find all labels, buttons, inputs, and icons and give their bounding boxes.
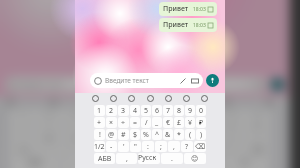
button[interactable]: ¥ — [185, 117, 195, 128]
button[interactable]: АБВ — [9, 157, 60, 168]
button[interactable]: ; — [156, 145, 184, 156]
button[interactable]: tool4 — [179, 98, 188, 107]
button[interactable]: 6 — [152, 105, 162, 116]
button[interactable]: 5 — [116, 109, 141, 120]
button[interactable]: @ — [106, 129, 117, 140]
button[interactable]: Введите текст — [5, 77, 268, 92]
button[interactable]: tool2 — [92, 98, 101, 107]
button[interactable]: * — [174, 129, 184, 140]
button[interactable]: 6 — [142, 109, 167, 120]
button[interactable]: Введите текст — [90, 73, 203, 88]
button[interactable]: 8 — [194, 109, 219, 120]
button[interactable]: 8 — [174, 105, 184, 116]
button[interactable]: ÷ — [118, 117, 129, 128]
button[interactable]: × — [106, 117, 117, 128]
button[interactable]: 0 — [196, 105, 206, 116]
button[interactable]: Русский — [138, 153, 160, 164]
button[interactable]: & — [168, 133, 193, 144]
button[interactable]: / — [116, 121, 141, 132]
button[interactable]: ? — [181, 141, 193, 152]
button[interactable]: : — [127, 145, 155, 156]
button[interactable]: Record voice message — [271, 78, 284, 91]
button[interactable]: tool5 — [182, 94, 191, 103]
button[interactable]: % — [116, 133, 141, 144]
button[interactable]: + — [94, 117, 105, 128]
button[interactable]: 4 — [90, 109, 115, 120]
button[interactable]: Record voice message — [206, 74, 219, 87]
button[interactable]: tool6 — [265, 98, 274, 107]
button[interactable]: 😊 — [184, 153, 206, 164]
button[interactable]: , — [61, 157, 112, 168]
button[interactable]: $ — [90, 133, 115, 144]
button[interactable]: = — [130, 117, 140, 128]
button[interactable]: Русский — [113, 157, 165, 168]
button[interactable]: £ — [194, 121, 219, 132]
button[interactable]: Привет — [159, 2, 217, 16]
button[interactable]: 9 — [220, 109, 245, 120]
button[interactable]: tool4 — [164, 94, 173, 103]
button[interactable]: / — [141, 117, 151, 128]
button[interactable]: ^ — [142, 133, 167, 144]
button[interactable]: ^ — [152, 129, 162, 140]
button[interactable]: " — [130, 141, 141, 152]
button[interactable]: . — [166, 157, 218, 168]
button[interactable]: 3 — [118, 105, 129, 116]
button[interactable]: 4 — [130, 105, 140, 116]
button[interactable]: ! — [94, 129, 105, 140]
button[interactable]: € — [163, 117, 173, 128]
button[interactable]: " — [98, 145, 126, 156]
button[interactable]: , — [185, 145, 213, 156]
button[interactable]: ⌫ — [194, 141, 206, 152]
button[interactable]: ) — [196, 129, 206, 140]
button[interactable]: 7 — [168, 109, 193, 120]
button[interactable]: 1/2 — [94, 141, 105, 152]
button[interactable]: АБВ — [94, 153, 115, 164]
button[interactable]: 5 — [141, 105, 151, 116]
button[interactable]: 7 — [163, 105, 173, 116]
button[interactable]: ¥ — [220, 121, 245, 132]
button[interactable]: 9 — [185, 105, 195, 116]
button[interactable]: _ — [142, 121, 167, 132]
button[interactable]: Привет — [159, 18, 217, 32]
button[interactable]: ( — [220, 133, 245, 144]
button[interactable]: € — [168, 121, 193, 132]
button[interactable]: 1 — [94, 105, 105, 116]
button[interactable]: ; — [155, 141, 167, 152]
button[interactable]: 3 — [63, 109, 89, 120]
button[interactable]: # — [63, 133, 89, 144]
button[interactable]: 2 — [106, 105, 117, 116]
button[interactable]: & — [163, 129, 173, 140]
button[interactable]: , — [116, 153, 137, 164]
button[interactable]: tool1 — [109, 94, 118, 103]
button[interactable]: * — [194, 133, 219, 144]
button[interactable]: _ — [152, 117, 162, 128]
button[interactable]: : — [142, 141, 154, 152]
button[interactable]: tool3 — [146, 94, 155, 103]
button[interactable]: % — [141, 129, 151, 140]
button[interactable]: ' — [69, 145, 97, 156]
button[interactable]: ' — [118, 141, 129, 152]
button[interactable]: . — [161, 153, 183, 164]
button[interactable]: £ — [174, 117, 184, 128]
button[interactable]: tool6 — [200, 94, 209, 103]
button[interactable]: ₽ — [196, 117, 206, 128]
button[interactable]: $ — [130, 129, 140, 140]
button[interactable]: = — [90, 121, 115, 132]
button[interactable]: , — [168, 141, 180, 152]
button[interactable]: tool2 — [127, 94, 136, 103]
button[interactable]: tool5 — [222, 98, 231, 107]
button[interactable]: 😊 — [219, 157, 271, 168]
